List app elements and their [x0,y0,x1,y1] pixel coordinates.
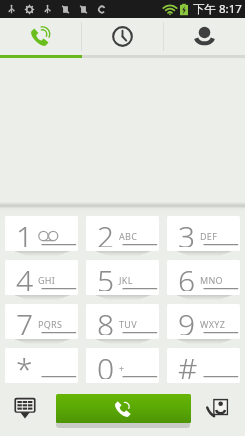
staticText: 3 [178,216,196,247]
button[interactable]: Contacts [206,396,230,420]
button[interactable]: 5 [86,260,159,295]
staticText: DEF [200,230,218,242]
staticText: GHI [38,274,56,286]
button[interactable]: 0 [86,348,159,383]
button[interactable]: Contacts [164,18,245,55]
staticText: # [178,348,198,379]
button[interactable]: 3 [167,216,240,251]
staticText: 5 [97,260,115,291]
button[interactable]: 6 [167,260,240,295]
staticText: TUV [119,318,137,330]
staticText: 4 [16,260,34,291]
button[interactable]: 7 [5,304,78,339]
button[interactable]: # [167,348,240,383]
staticText: 8 [97,304,115,335]
button[interactable]: Call history [82,18,163,55]
button[interactable]: 8 [86,304,159,339]
button[interactable]: 2 [86,216,159,251]
staticText: JKL [119,274,133,286]
button[interactable]: Dialer [0,18,81,55]
button[interactable]: 1 [5,216,78,251]
button[interactable]: 4 [5,260,78,295]
button[interactable]: Call [56,394,191,423]
staticText: 下午 8:17 [193,1,242,17]
staticText: PQRS [38,318,63,330]
staticText: 0 [97,348,115,379]
staticText: 6 [178,260,196,291]
staticText: * [16,348,33,379]
staticText: 1 [16,216,34,247]
staticText: + [119,362,125,374]
button[interactable]: 9 [167,304,240,339]
button[interactable]: * [5,348,78,383]
staticText: ABC [119,230,138,242]
staticText: MNO [200,274,223,286]
staticText: WXYZ [200,318,226,330]
button[interactable]: Hide dialpad [13,394,37,420]
staticText: 7 [16,304,34,335]
staticText: 9 [178,304,196,335]
staticText: 2 [97,216,115,247]
